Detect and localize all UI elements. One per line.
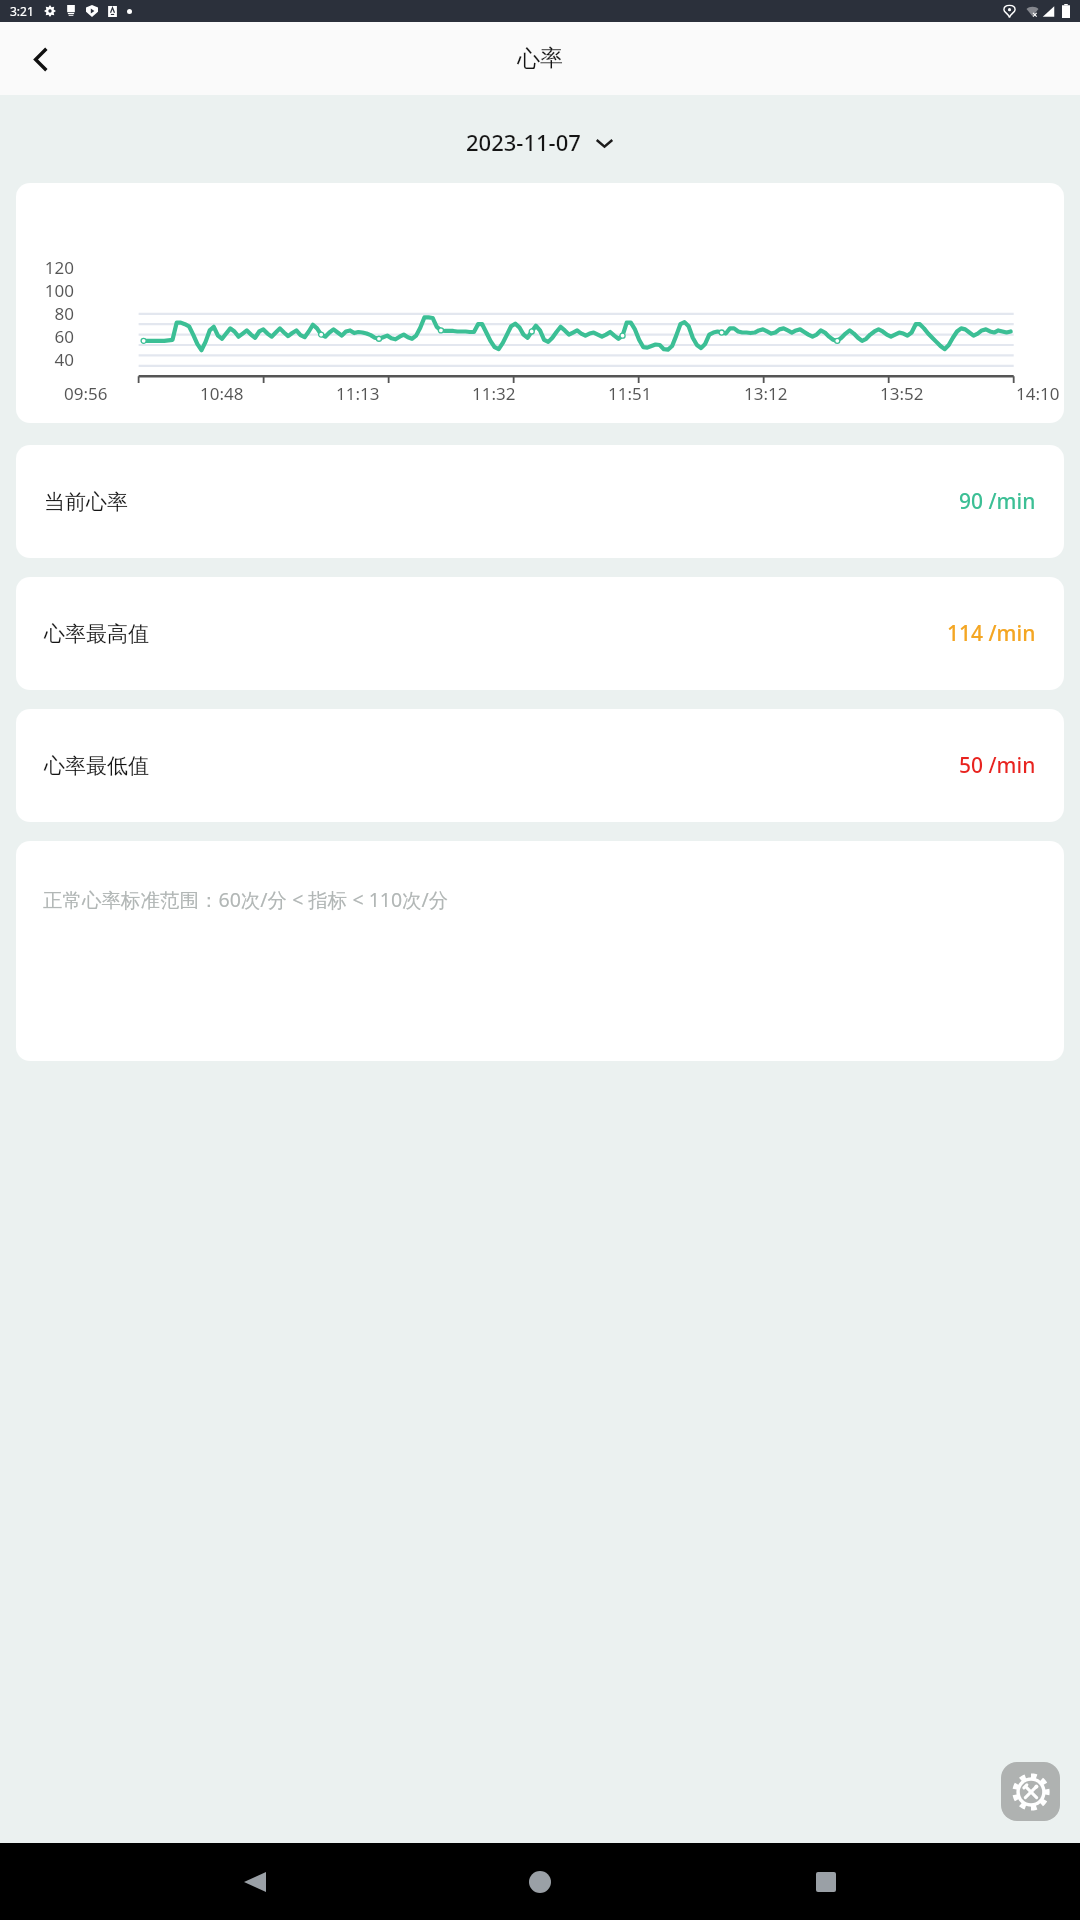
staticText: 90 /min [959, 487, 1036, 516]
button[interactable]: 心率最高值 [16, 577, 1064, 690]
staticText: 100 [44, 279, 74, 302]
staticText: 14:10 [1016, 382, 1060, 405]
staticText: 11:51 [608, 382, 652, 405]
staticText: 120 [44, 256, 74, 279]
staticText: 13:52 [880, 382, 924, 405]
staticText: 11:32 [472, 382, 516, 405]
button[interactable]: 正常心率标准范围：60次/分 < 指标 < 110次/分 [16, 841, 1064, 1061]
button[interactable]: Back [16, 34, 66, 84]
staticText: 09:56 [64, 382, 108, 405]
staticText: 3:21 [10, 3, 34, 19]
staticText: 60 [54, 325, 74, 348]
staticText: 当前心率 [44, 489, 128, 515]
staticText: 10:48 [200, 382, 244, 405]
button[interactable]: 120 [16, 183, 1064, 423]
staticText: 80 [54, 302, 74, 325]
button[interactable]: Back [224, 1851, 286, 1913]
button[interactable]: Tools settings [1001, 1762, 1060, 1821]
staticText: 114 /min [947, 619, 1036, 648]
button[interactable]: 心率最低值 [16, 709, 1064, 822]
staticText: 40 [54, 348, 74, 371]
button[interactable]: 2023-11-07 [0, 118, 1080, 166]
staticText: 心率 [517, 44, 563, 73]
staticText: 11:13 [336, 382, 380, 405]
staticText: 正常心率标准范围：60次/分 < 指标 < 110次/分 [43, 886, 449, 913]
button[interactable]: 当前心率 [16, 445, 1064, 558]
staticText: 13:12 [744, 382, 788, 405]
staticText: 心率最高值 [44, 621, 149, 647]
button[interactable]: Home [509, 1851, 571, 1913]
staticText: 2023-11-07 [466, 127, 581, 157]
button[interactable]: Recents [795, 1851, 857, 1913]
staticText: 50 /min [959, 751, 1036, 780]
staticText: 心率最低值 [44, 753, 149, 779]
